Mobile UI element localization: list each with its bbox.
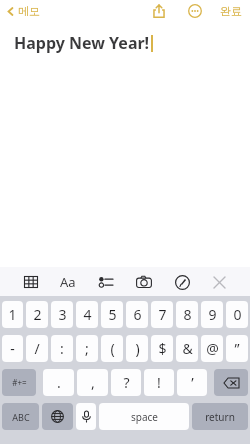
staticText: ’	[191, 373, 194, 392]
button[interactable]: -	[2, 335, 23, 362]
staticText: @	[206, 339, 219, 358]
staticText: (	[110, 339, 115, 358]
staticText: 8	[183, 305, 192, 324]
staticText: #+=	[12, 377, 27, 388]
button[interactable]: $	[151, 335, 173, 362]
button[interactable]: More options	[184, 0, 206, 22]
button[interactable]: ?	[111, 369, 141, 396]
button[interactable]: (	[101, 335, 123, 362]
button[interactable]: ’	[177, 369, 207, 396]
button[interactable]: 4	[76, 301, 98, 328]
button[interactable]: 0	[226, 301, 248, 328]
button[interactable]: )	[126, 335, 148, 362]
button[interactable]: &	[176, 335, 198, 362]
button[interactable]: 3	[51, 301, 73, 328]
staticText: !	[157, 373, 161, 392]
button[interactable]: #+=	[2, 369, 36, 396]
staticText: :	[60, 339, 64, 358]
staticText: 7	[158, 305, 167, 324]
staticText: ,	[91, 373, 95, 392]
button[interactable]: ABC	[2, 403, 39, 430]
button[interactable]: 메모	[5, 4, 40, 18]
button[interactable]: 6	[126, 301, 148, 328]
button[interactable]: ,	[77, 369, 108, 396]
button[interactable]: ”	[226, 335, 248, 362]
button[interactable]: Backspace	[214, 369, 248, 396]
button[interactable]: space	[99, 403, 189, 430]
button[interactable]: Table	[18, 269, 44, 295]
button[interactable]: 2	[26, 301, 48, 328]
staticText: 0	[233, 305, 242, 324]
staticText: 9	[208, 305, 217, 324]
staticText: $	[158, 339, 167, 358]
staticText: .	[57, 373, 61, 392]
button[interactable]: return	[192, 403, 248, 430]
staticText: &	[182, 339, 193, 358]
staticText: 5	[108, 305, 117, 324]
staticText: 3	[58, 305, 67, 324]
button[interactable]: Close keyboard	[206, 269, 232, 295]
button[interactable]: Checklist	[93, 269, 119, 295]
staticText: /	[34, 339, 40, 358]
button[interactable]: Markup	[169, 269, 195, 295]
staticText: ;	[85, 339, 89, 358]
button[interactable]: Camera	[131, 269, 157, 295]
button[interactable]: !	[144, 369, 174, 396]
button[interactable]: Text format	[55, 269, 81, 295]
staticText: 4	[83, 305, 92, 324]
staticText: Happy New Year!	[14, 32, 150, 54]
button[interactable]: 8	[176, 301, 198, 328]
button[interactable]: 7	[151, 301, 173, 328]
button[interactable]: Share	[148, 0, 170, 22]
staticText: space	[131, 410, 158, 424]
button[interactable]: 1	[2, 301, 23, 328]
button[interactable]: 완료	[218, 4, 244, 18]
staticText: return	[205, 410, 235, 424]
button[interactable]: 9	[201, 301, 223, 328]
staticText: 1	[8, 305, 17, 324]
staticText: 완료	[220, 4, 242, 18]
button[interactable]: /	[26, 335, 48, 362]
button[interactable]: :	[51, 335, 73, 362]
staticText: ?	[123, 373, 130, 392]
staticText: Aa	[60, 273, 76, 291]
staticText: ”	[234, 339, 240, 358]
staticText: )	[135, 339, 140, 358]
button[interactable]: ;	[76, 335, 98, 362]
button[interactable]: Change keyboard	[42, 403, 73, 430]
button[interactable]: 5	[101, 301, 123, 328]
staticText: 6	[133, 305, 142, 324]
staticText: 2	[33, 305, 42, 324]
button[interactable]: .	[43, 369, 74, 396]
staticText: ABC	[12, 411, 30, 423]
button[interactable]: Dictate	[76, 403, 96, 430]
button[interactable]: @	[201, 335, 223, 362]
staticText: 메모	[18, 4, 40, 18]
staticText: -	[10, 339, 15, 358]
